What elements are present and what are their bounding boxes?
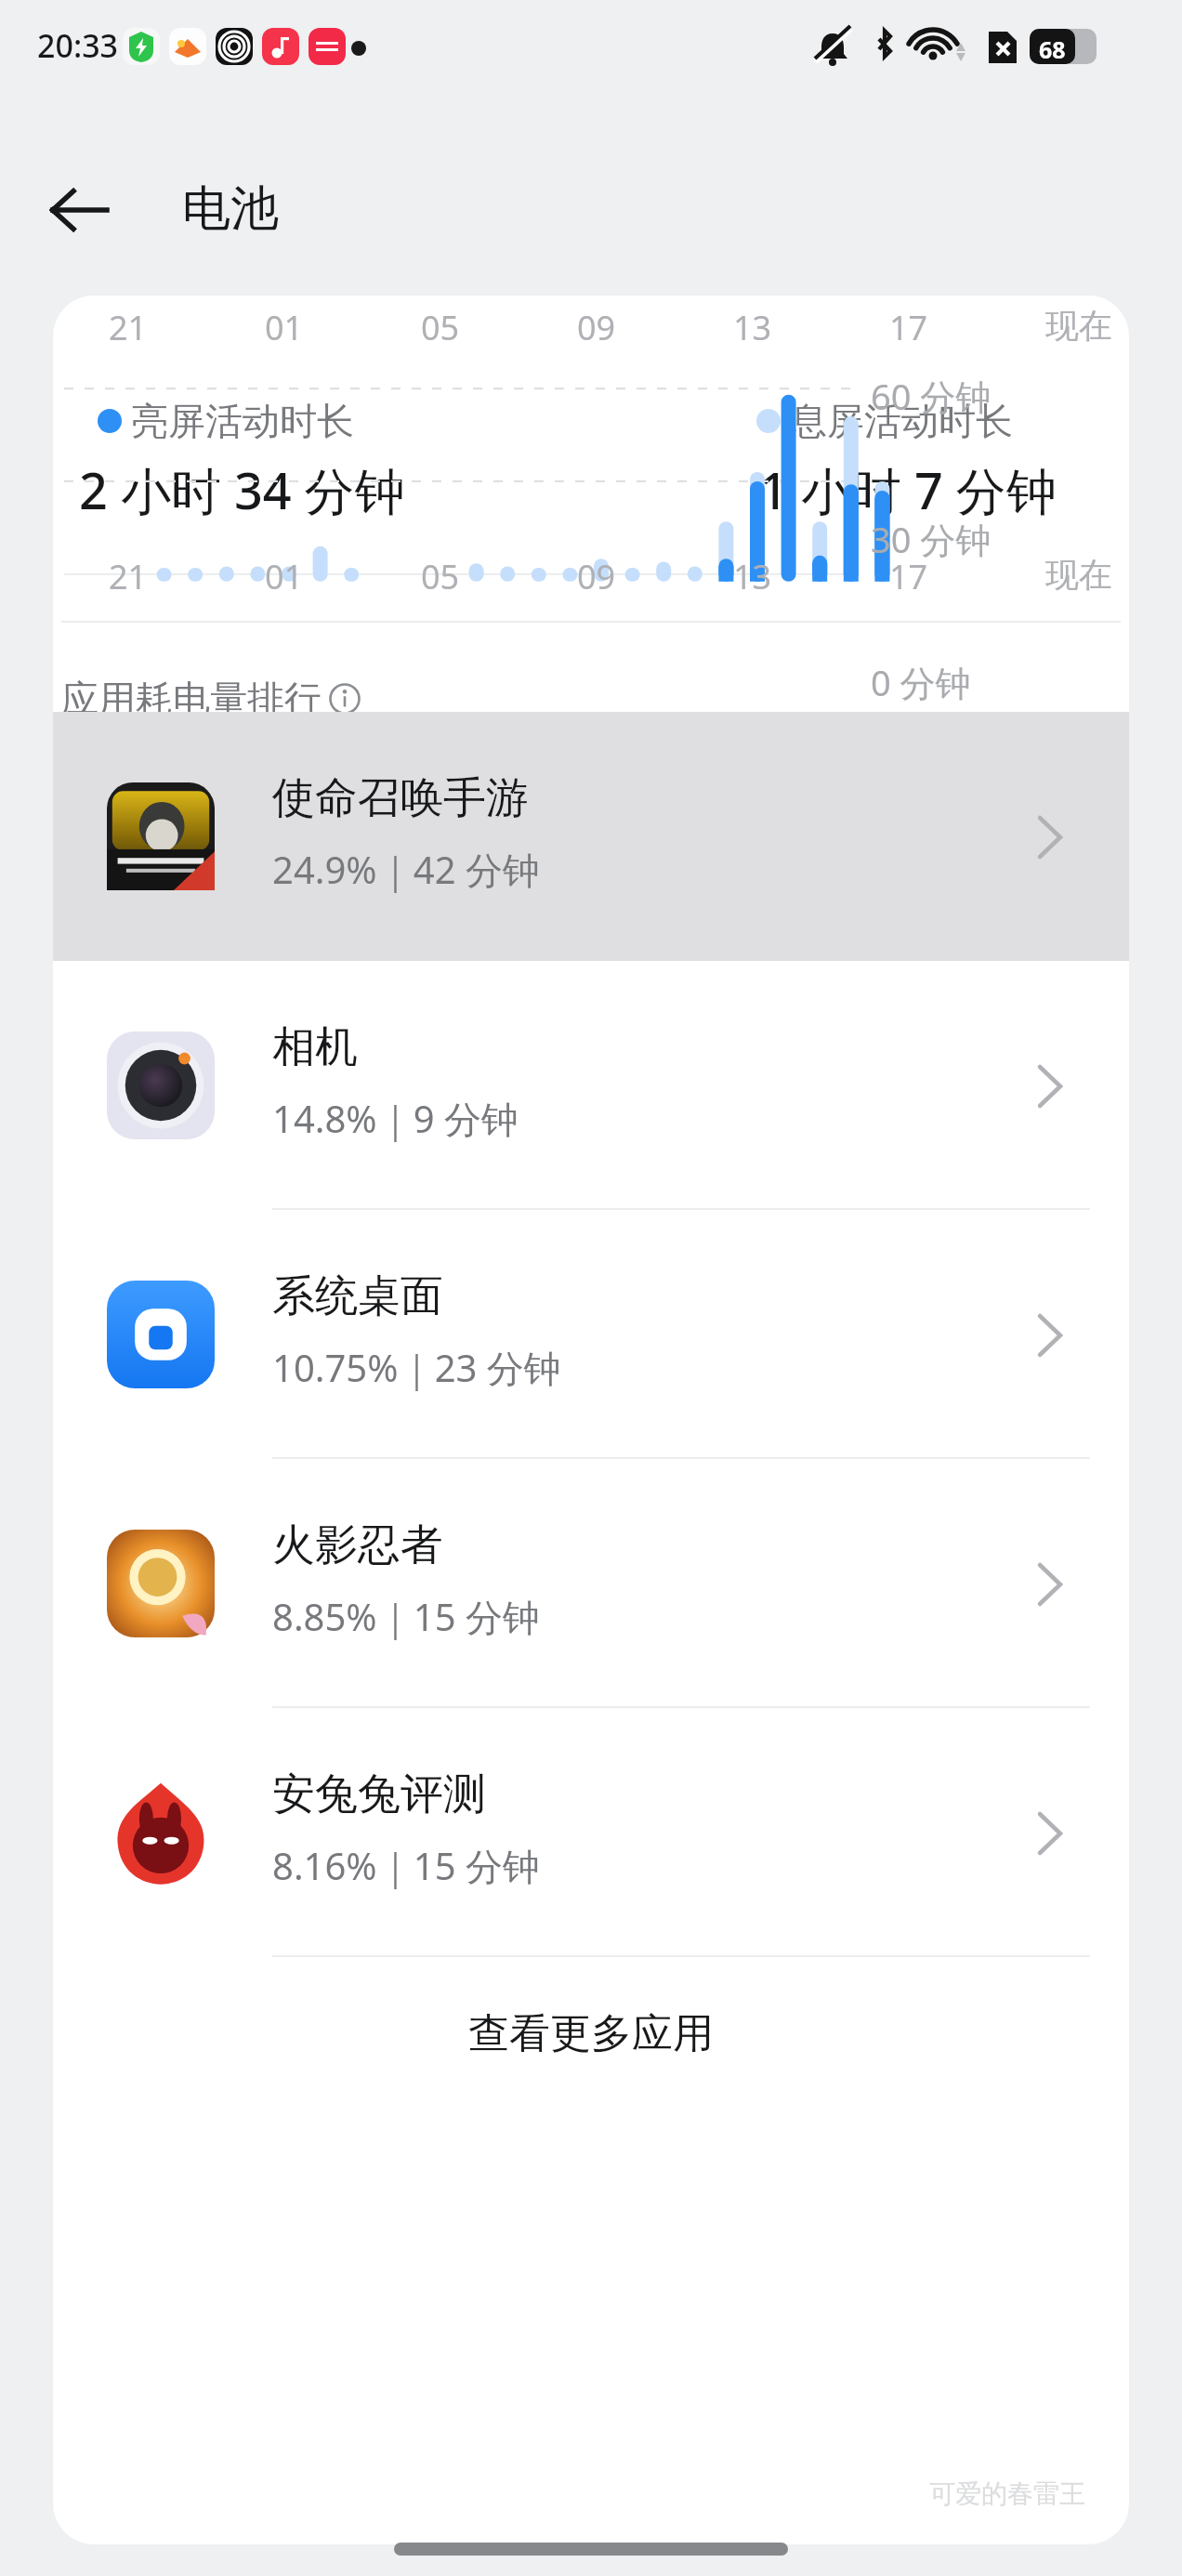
staticText: 21: [109, 554, 148, 599]
staticText: 30 分钟: [871, 515, 992, 563]
staticText: 60 分钟: [871, 372, 992, 420]
staticText: 13: [733, 305, 772, 350]
button[interactable]: Back: [28, 160, 128, 260]
staticText: 01: [265, 554, 304, 599]
button[interactable]: 查看更多应用: [53, 1959, 1129, 2108]
button[interactable]: 安兔兔评测: [53, 1708, 1129, 1957]
staticText: 17: [889, 554, 928, 599]
staticText: 使命召唤手游: [272, 771, 529, 825]
staticText: 现在: [1045, 305, 1112, 347]
staticText: 相机: [272, 1020, 358, 1074]
staticText: 息屏活动时长: [790, 398, 1013, 444]
staticText: 火影忍者: [272, 1518, 443, 1572]
staticText: 05: [421, 305, 460, 350]
button[interactable]: 使命召唤手游: [53, 712, 1129, 961]
staticText: 21: [109, 305, 148, 350]
staticText: 安兔兔评测: [272, 1768, 486, 1821]
staticText: 亮屏活动时长: [131, 398, 354, 444]
staticText: 09: [577, 305, 616, 350]
staticText: 20:33: [37, 24, 119, 67]
staticText: 05: [421, 554, 460, 599]
staticText: 应用耗电量排行: [61, 676, 322, 722]
button[interactable]: 火影忍者: [53, 1459, 1129, 1708]
staticText: 2 小时 34 分钟: [79, 455, 405, 524]
staticText: 09: [577, 554, 616, 599]
staticText: 电池: [182, 178, 279, 240]
staticText: 8.85%｜15 分钟: [272, 1591, 540, 1642]
staticText: 24.9%｜42 分钟: [272, 844, 540, 895]
staticText: 1 小时 7 分钟: [759, 455, 1057, 524]
button[interactable]: 系统桌面: [53, 1210, 1129, 1459]
staticText: 68: [1039, 33, 1066, 65]
staticText: 0 分钟: [871, 658, 971, 706]
staticText: 查看更多应用: [468, 2008, 714, 2059]
staticText: 可爱的春雷王: [929, 2477, 1085, 2510]
staticText: 现在: [1045, 554, 1112, 596]
staticText: 8.16%｜15 分钟: [272, 1840, 540, 1891]
staticText: 13: [733, 554, 772, 599]
staticText: 17: [889, 305, 928, 350]
staticText: 01: [265, 305, 304, 350]
staticText: 14.8%｜9 分钟: [272, 1093, 519, 1144]
staticText: 10.75%｜23 分钟: [272, 1342, 561, 1393]
staticText: 系统桌面: [272, 1269, 443, 1323]
button[interactable]: 相机: [53, 961, 1129, 1210]
